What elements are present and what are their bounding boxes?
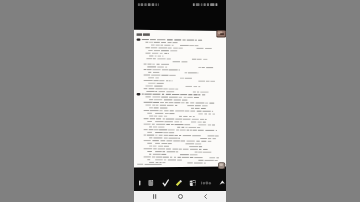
button[interactable]: Adjust contrast xyxy=(186,169,199,191)
button[interactable]: Home xyxy=(175,191,186,202)
button[interactable]: Confirm xyxy=(158,169,172,191)
button[interactable]: Recents xyxy=(149,191,160,202)
button[interactable]: Text xyxy=(134,169,144,191)
button[interactable]: Document xyxy=(144,169,158,191)
button[interactable]: Back xyxy=(200,191,211,202)
button[interactable]: Undo xyxy=(199,169,215,191)
button[interactable]: Highlighter xyxy=(172,169,186,191)
button[interactable]: Share xyxy=(215,169,226,191)
